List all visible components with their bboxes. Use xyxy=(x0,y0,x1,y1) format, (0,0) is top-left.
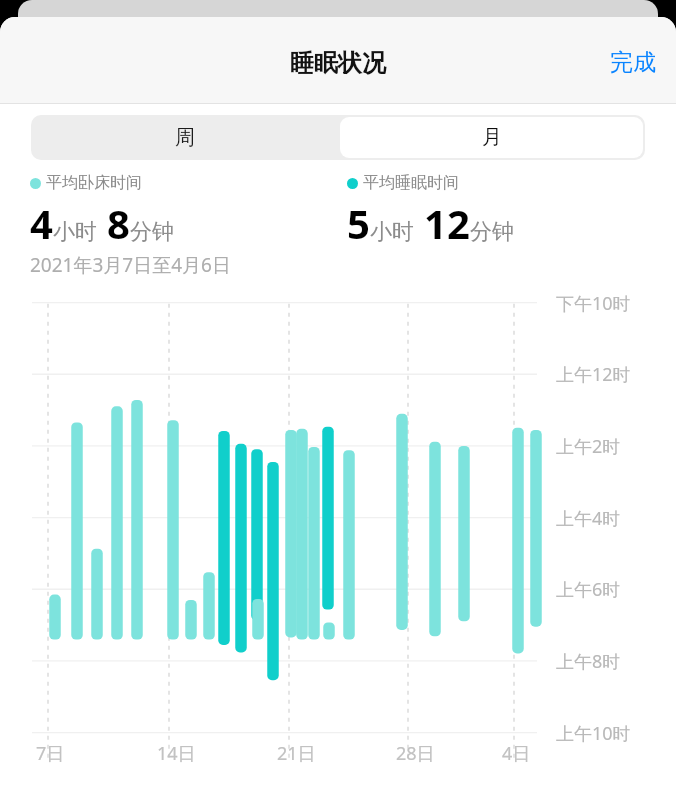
staticText: 8 xyxy=(107,196,130,250)
staticText: 上午8时 xyxy=(556,649,621,674)
staticText: 4日 xyxy=(502,741,531,766)
button[interactable]: 月 xyxy=(340,117,643,158)
staticText: 小时 xyxy=(53,218,97,246)
staticText: 21日 xyxy=(277,741,316,766)
staticText: 平均睡眠时间 xyxy=(363,173,459,193)
staticText: 上午4时 xyxy=(556,506,621,531)
staticText: 12 xyxy=(424,196,470,250)
staticText: 小时 xyxy=(370,218,414,246)
staticText: 28日 xyxy=(396,741,435,766)
staticText: 周 xyxy=(175,125,195,150)
staticText: 上午10时 xyxy=(556,721,631,746)
staticText: 完成 xyxy=(610,48,656,77)
staticText: 分钟 xyxy=(130,218,174,246)
staticText: 2021年3月7日至4月6日 xyxy=(30,252,231,278)
staticText: 5 xyxy=(347,196,370,250)
staticText: 7日 xyxy=(36,741,65,766)
staticText: 平均卧床时间 xyxy=(46,173,142,193)
button[interactable]: 周 xyxy=(31,115,338,160)
staticText: 4 xyxy=(30,196,53,250)
staticText: 下午10时 xyxy=(556,291,631,316)
button[interactable]: 完成 xyxy=(590,36,676,89)
staticText: 上午12时 xyxy=(556,362,631,387)
staticText: 分钟 xyxy=(470,218,514,246)
staticText: 月 xyxy=(482,125,502,150)
staticText: 14日 xyxy=(157,741,196,766)
staticText: 上午6时 xyxy=(556,577,621,602)
staticText: 上午2时 xyxy=(556,434,621,459)
staticText: 睡眠状况 xyxy=(290,48,386,78)
